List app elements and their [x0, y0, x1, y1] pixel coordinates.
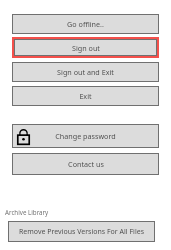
button[interactable]: Sign out	[14, 39, 157, 56]
staticText: Exit	[79, 91, 92, 101]
button[interactable]: Remove Previous Versions For All Files	[8, 221, 155, 242]
button[interactable]: Sign out and Exit	[12, 62, 159, 82]
button[interactable]: Go offline..	[12, 14, 159, 34]
staticText: Contact us	[68, 159, 104, 169]
staticText: Sign out and Exit	[57, 67, 114, 77]
button[interactable]: Contact us	[12, 153, 159, 175]
button[interactable]: Lock	[12, 124, 159, 148]
staticText: Sign out	[72, 43, 100, 53]
other: Lock	[17, 128, 30, 145]
staticText: Archive Library	[5, 208, 49, 216]
staticText: Change password	[55, 131, 116, 141]
staticText: Go offline..	[67, 19, 104, 29]
staticText: Remove Previous Versions For All Files	[19, 227, 144, 237]
button[interactable]: Exit	[12, 86, 159, 106]
